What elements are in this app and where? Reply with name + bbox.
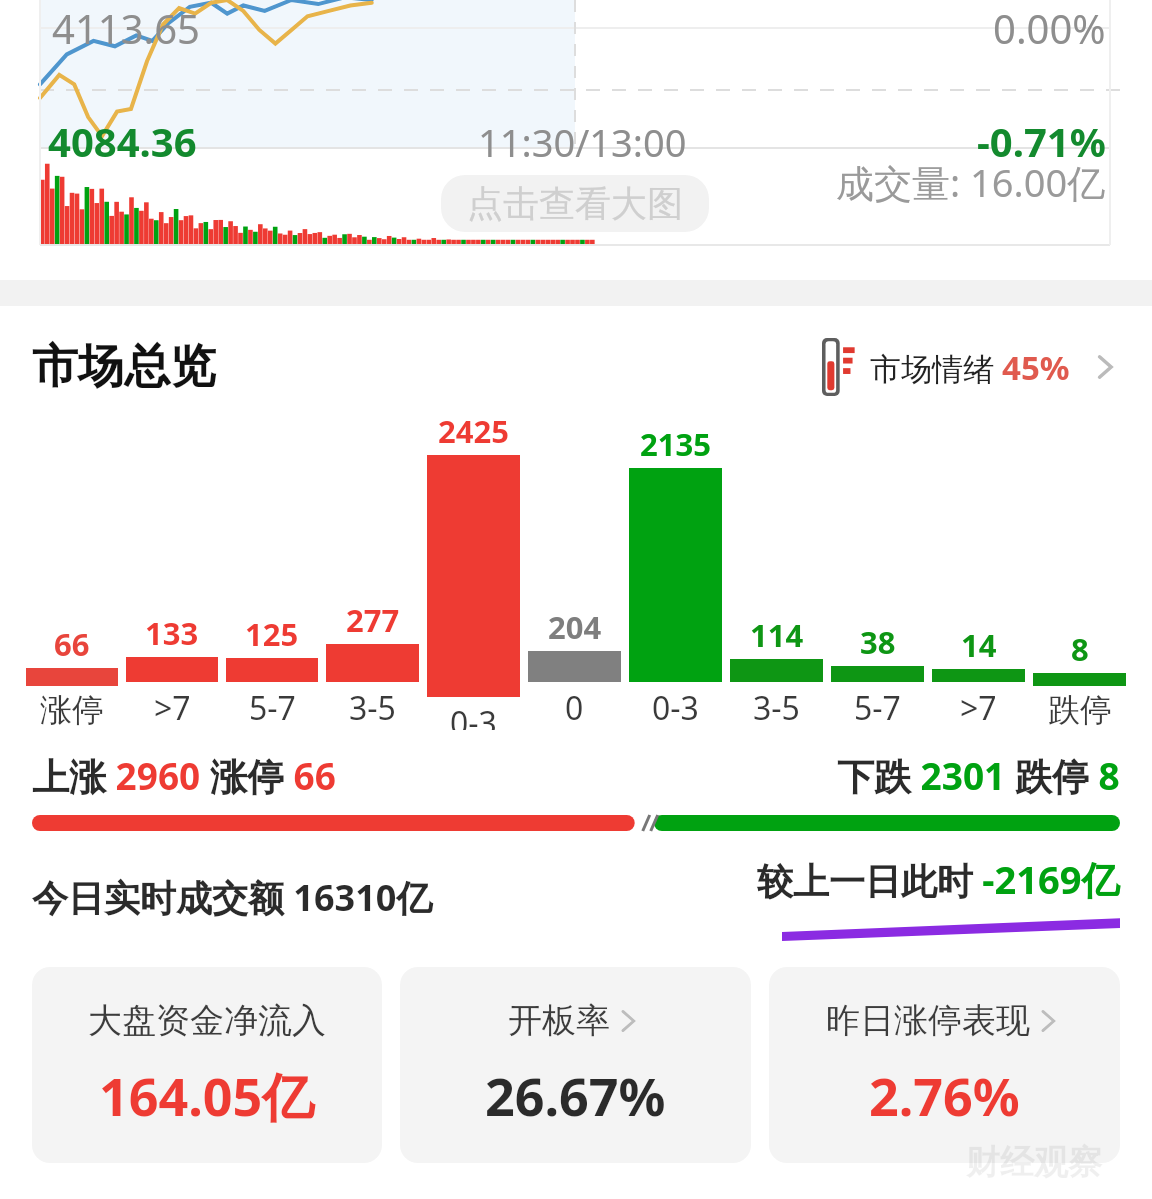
staticText: 上涨 2960 涨停 66 [32,750,336,801]
staticText: 277 [346,599,400,641]
button[interactable]: 133 [126,410,218,730]
staticText: 成交量: 16.00亿 [836,156,1106,208]
staticText: 2135 [640,423,711,465]
staticText: 133 [145,612,199,654]
button[interactable]: 昨日涨停表现 [769,967,1120,1163]
staticText: 3-5 [753,686,800,730]
button[interactable]: 114 [730,410,823,730]
staticText: 开板率 [508,999,610,1042]
button[interactable]: 点击查看大图 [441,175,709,232]
staticText: 5-7 [854,686,901,730]
staticText: 38 [860,621,896,663]
staticText: 114 [750,614,804,656]
button[interactable]: 2425 [427,410,520,730]
staticText: >7 [960,686,997,730]
staticText: 2425 [438,410,509,452]
button[interactable]: 204 [528,410,621,730]
button[interactable]: 125 [226,410,318,730]
staticText: 0.00% [993,1,1106,55]
staticText: >7 [154,686,191,730]
staticText: 2.76% [869,1060,1020,1131]
button[interactable]: 开板率 [400,967,751,1163]
staticText: 市场情绪 45% [870,345,1070,390]
staticText: 市场总览 [32,338,216,396]
staticText: 26.67% [485,1060,666,1131]
staticText: 较上一日此时 -2169亿 [757,853,1120,905]
staticText: 0-3 [450,701,497,730]
staticText: -0.71% [977,114,1106,168]
staticText: 8 [1071,628,1089,670]
button[interactable]: 66 [26,410,118,730]
button[interactable]: 市场情绪 45% [816,332,1128,402]
staticText: 204 [548,606,602,648]
staticText: 4084.36 [48,114,197,168]
button[interactable]: 277 [326,410,419,730]
staticText: 11:30/13:00 [478,116,687,168]
staticText: 大盘资金净流入 [88,999,326,1042]
staticText: 125 [245,613,299,655]
staticText: 涨停 [40,690,104,730]
staticText: 3-5 [349,686,396,730]
staticText: 下跌 2301 跌停 8 [837,750,1120,801]
staticText: 4113.65 [52,1,200,55]
button[interactable]: 大盘资金净流入 [32,967,382,1163]
staticText: 昨日涨停表现 [826,999,1030,1042]
staticText: 点击查看大图 [467,181,683,226]
staticText: 0-3 [652,686,699,730]
button[interactable]: 8 [1033,410,1126,730]
staticText: 66 [54,623,90,665]
staticText: 今日实时成交额 16310亿 [32,873,433,922]
staticText: 5-7 [249,686,296,730]
button[interactable]: 14 [932,410,1025,730]
button[interactable]: 38 [831,410,924,730]
staticText: 跌停 [1048,690,1112,730]
staticText: 14 [961,624,997,666]
staticText: 0 [565,686,584,730]
staticText: 财经观察 [966,1141,1102,1184]
button[interactable]: 2135 [629,410,722,730]
staticText: 164.05亿 [99,1060,315,1131]
